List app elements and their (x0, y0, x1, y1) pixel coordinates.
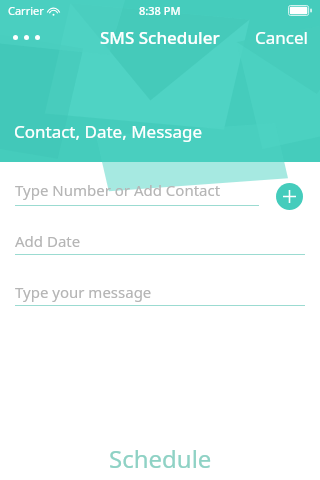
button[interactable]: Cancel (243, 20, 320, 54)
staticText: Type your message (15, 282, 152, 302)
button[interactable]: Add contact (276, 183, 303, 210)
staticText: 8:38 PM (139, 3, 181, 18)
staticText: Contact, Date, Message (14, 120, 203, 143)
staticText: Type Number or Add Contact (15, 180, 221, 200)
staticText: Add Date (15, 231, 81, 251)
staticText: Carrier (8, 3, 44, 18)
button[interactable]: More options (0, 20, 52, 54)
button[interactable]: Add Date (0, 230, 320, 255)
button[interactable]: Type Number or Add Contact (0, 178, 262, 206)
staticText: Cancel (255, 26, 308, 48)
button[interactable]: Schedule (0, 432, 320, 480)
button[interactable]: Type your message (0, 281, 320, 306)
staticText: Schedule (109, 442, 212, 475)
staticText: SMS Scheduler (100, 26, 220, 49)
